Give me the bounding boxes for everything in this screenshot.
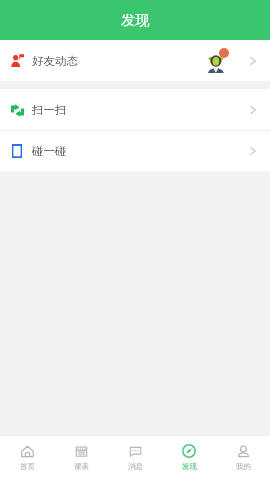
staticText: 我的 [236, 462, 251, 471]
staticText: 课表 [74, 462, 89, 471]
button[interactable]: 首页 [0, 436, 54, 480]
staticText: 碰一碰 [32, 144, 67, 158]
button[interactable]: 消息 [108, 436, 162, 480]
button[interactable]: 我的 [216, 436, 270, 480]
staticText: 发现 [121, 11, 150, 29]
staticText: 消息 [128, 462, 143, 471]
staticText: 首页 [20, 462, 35, 471]
button[interactable]: 碰一碰 [0, 131, 270, 171]
button[interactable]: 课表 [54, 436, 108, 480]
staticText: 发现 [182, 462, 197, 471]
staticText: 扫一扫 [32, 103, 67, 117]
other: 好友动态头像，有新消息 [206, 48, 229, 73]
button[interactable]: 扫一扫 [0, 89, 270, 130]
button[interactable]: 发现 [162, 436, 216, 480]
button[interactable]: 好友动态 [0, 40, 270, 81]
staticText: 好友动态 [32, 54, 78, 68]
